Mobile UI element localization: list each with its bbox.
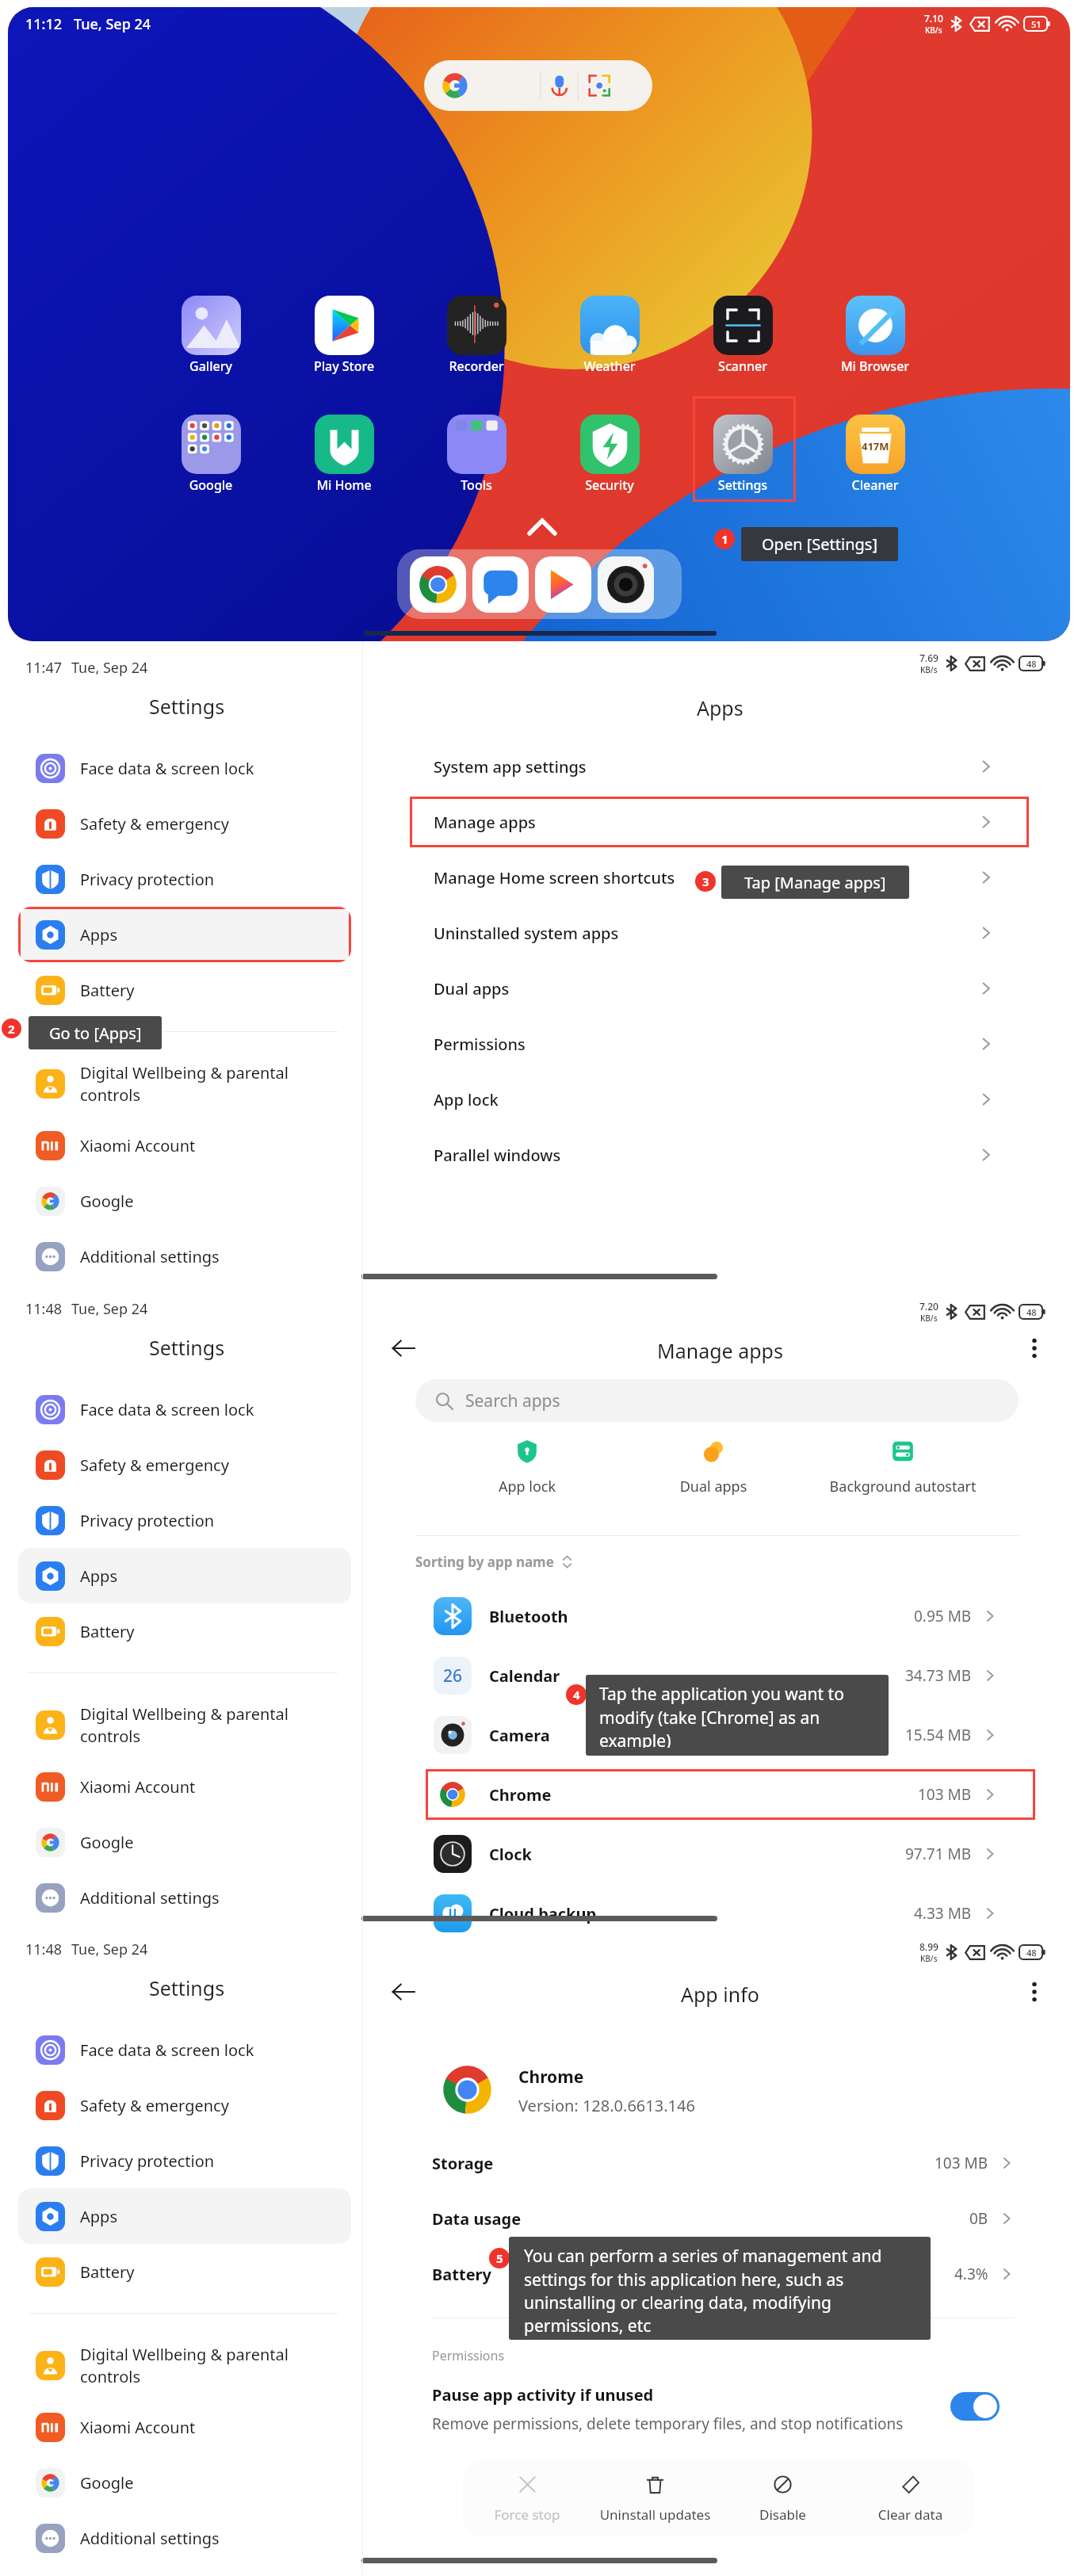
staticText: Apps: [80, 924, 318, 946]
button[interactable]: 26: [426, 1650, 1035, 1701]
button[interactable]: Additional settings: [18, 1229, 351, 1284]
button[interactable]: Safety & emergency: [18, 2077, 351, 2133]
staticText: Manage Home screen shortcuts: [434, 867, 675, 889]
button[interactable]: Dual apps: [410, 963, 1029, 1014]
staticText: Apps: [80, 1565, 318, 1587]
staticText: Xiaomi Account: [80, 1776, 318, 1798]
button[interactable]: Safety & emergency: [18, 1437, 351, 1492]
button[interactable]: Battery: [18, 962, 351, 1018]
button[interactable]: Back: [383, 1328, 424, 1369]
button[interactable]: Battery: [18, 2244, 351, 2299]
staticText: Battery: [432, 2264, 491, 2285]
button[interactable]: Additional settings: [18, 2510, 351, 2566]
button[interactable]: 417M: [837, 415, 913, 494]
button[interactable]: Permissions: [410, 1019, 1029, 1069]
button[interactable]: Face data & screen lock: [18, 1382, 351, 1437]
button[interactable]: Google: [18, 2455, 351, 2510]
button[interactable]: Digital Wellbeing & parental controls: [18, 2333, 351, 2398]
button[interactable]: Data usage: [432, 2198, 1015, 2239]
staticText: 5: [496, 2250, 503, 2266]
button[interactable]: More options: [1014, 1971, 1055, 2012]
button[interactable]: Security: [571, 415, 648, 494]
button[interactable]: Tools: [438, 415, 514, 494]
button[interactable]: Digital Wellbeing & parental controls: [18, 1051, 351, 1116]
button[interactable]: Dock app: [410, 556, 466, 613]
button[interactable]: Weather: [571, 296, 648, 375]
button[interactable]: Chrome: [426, 1769, 1035, 1820]
button[interactable]: Scanner: [705, 296, 781, 375]
button[interactable]: Dock app: [472, 556, 529, 613]
button[interactable]: Mi Browser: [837, 296, 913, 375]
staticText: 0.95 MB: [914, 1606, 972, 1626]
button[interactable]: Privacy protection: [18, 2133, 351, 2188]
button[interactable]: Google: [18, 1173, 351, 1229]
button[interactable]: Bluetooth: [426, 1591, 1035, 1642]
button[interactable]: Battery: [432, 2253, 1015, 2295]
staticText: 48: [1026, 1306, 1037, 1318]
button[interactable]: Clear data: [847, 2473, 974, 2524]
button[interactable]: Background autostart: [828, 1439, 978, 1496]
button[interactable]: Manage Home screen shortcuts: [410, 852, 1029, 903]
button[interactable]: Manage apps: [410, 797, 1029, 847]
staticText: You can perform a series of management a…: [524, 2245, 903, 2337]
button[interactable]: Parallel windows: [410, 1129, 1029, 1180]
button[interactable]: Camera: [426, 1710, 1035, 1760]
button[interactable]: Disable: [719, 2473, 847, 2524]
button[interactable]: More options: [1014, 1328, 1055, 1369]
staticText: Cloud backup: [489, 1903, 597, 1924]
staticText: 7.20: [919, 1300, 938, 1313]
button[interactable]: Apps: [18, 1548, 351, 1603]
staticText: Permissions: [434, 1034, 526, 1055]
staticText: Google: [80, 2472, 318, 2494]
staticText: 103 MB: [918, 1784, 972, 1805]
button[interactable]: Xiaomi Account: [18, 1118, 351, 1173]
button[interactable]: App lock: [410, 1074, 1029, 1125]
button[interactable]: Pause app activity toggle: [950, 2392, 1000, 2421]
button[interactable]: Face data & screen lock: [18, 740, 351, 796]
button[interactable]: Storage: [432, 2142, 1015, 2184]
button[interactable]: Xiaomi Account: [18, 1759, 351, 1814]
staticText: 4: [573, 1687, 580, 1703]
button[interactable]: Mi Home: [306, 415, 382, 494]
button[interactable]: Gallery: [173, 296, 249, 375]
button[interactable]: Privacy protection: [18, 1492, 351, 1548]
staticText: Dual apps: [434, 978, 510, 999]
button[interactable]: Dock app: [535, 556, 591, 613]
button[interactable]: Digital Wellbeing & parental controls: [18, 1692, 351, 1757]
button[interactable]: Privacy protection: [18, 851, 351, 907]
staticText: Calendar: [489, 1665, 560, 1687]
staticText: Bluetooth: [489, 1606, 568, 1627]
button[interactable]: Recorder: [438, 296, 514, 375]
staticText: Settings: [149, 1334, 225, 1361]
button[interactable]: Safety & emergency: [18, 796, 351, 851]
button[interactable]: Google search: [424, 60, 652, 111]
button[interactable]: Dock app: [598, 556, 654, 613]
button[interactable]: Google: [173, 415, 249, 494]
button[interactable]: Back: [383, 1971, 424, 2012]
button[interactable]: Apps: [18, 907, 351, 962]
button[interactable]: Force stop: [463, 2473, 591, 2524]
button[interactable]: Settings: [705, 415, 781, 494]
button[interactable]: Xiaomi Account: [18, 2399, 351, 2455]
staticText: Settings: [149, 693, 225, 720]
button[interactable]: Uninstalled system apps: [410, 908, 1029, 958]
staticText: Apps: [697, 694, 744, 721]
button[interactable]: Play Store: [306, 296, 382, 375]
button[interactable]: Additional settings: [18, 1870, 351, 1925]
staticText: Google: [80, 1832, 318, 1853]
button[interactable]: System app settings: [410, 741, 1029, 792]
button[interactable]: Cloud backup: [426, 1888, 1035, 1939]
button[interactable]: Apps: [18, 2188, 351, 2244]
staticText: Privacy protection: [80, 1510, 318, 1531]
button[interactable]: App lock: [452, 1439, 602, 1496]
button[interactable]: Face data & screen lock: [18, 2022, 351, 2077]
button[interactable]: Search apps: [415, 1379, 1019, 1422]
button[interactable]: Dual apps: [638, 1439, 789, 1496]
staticText: Search apps: [465, 1389, 560, 1412]
staticText: Manage apps: [434, 812, 536, 833]
button[interactable]: Clock: [426, 1829, 1035, 1879]
button[interactable]: Battery: [18, 1603, 351, 1659]
button[interactable]: Uninstall updates: [591, 2473, 719, 2524]
button[interactable]: Google: [18, 1814, 351, 1870]
staticText: Chrome: [518, 2066, 584, 2089]
